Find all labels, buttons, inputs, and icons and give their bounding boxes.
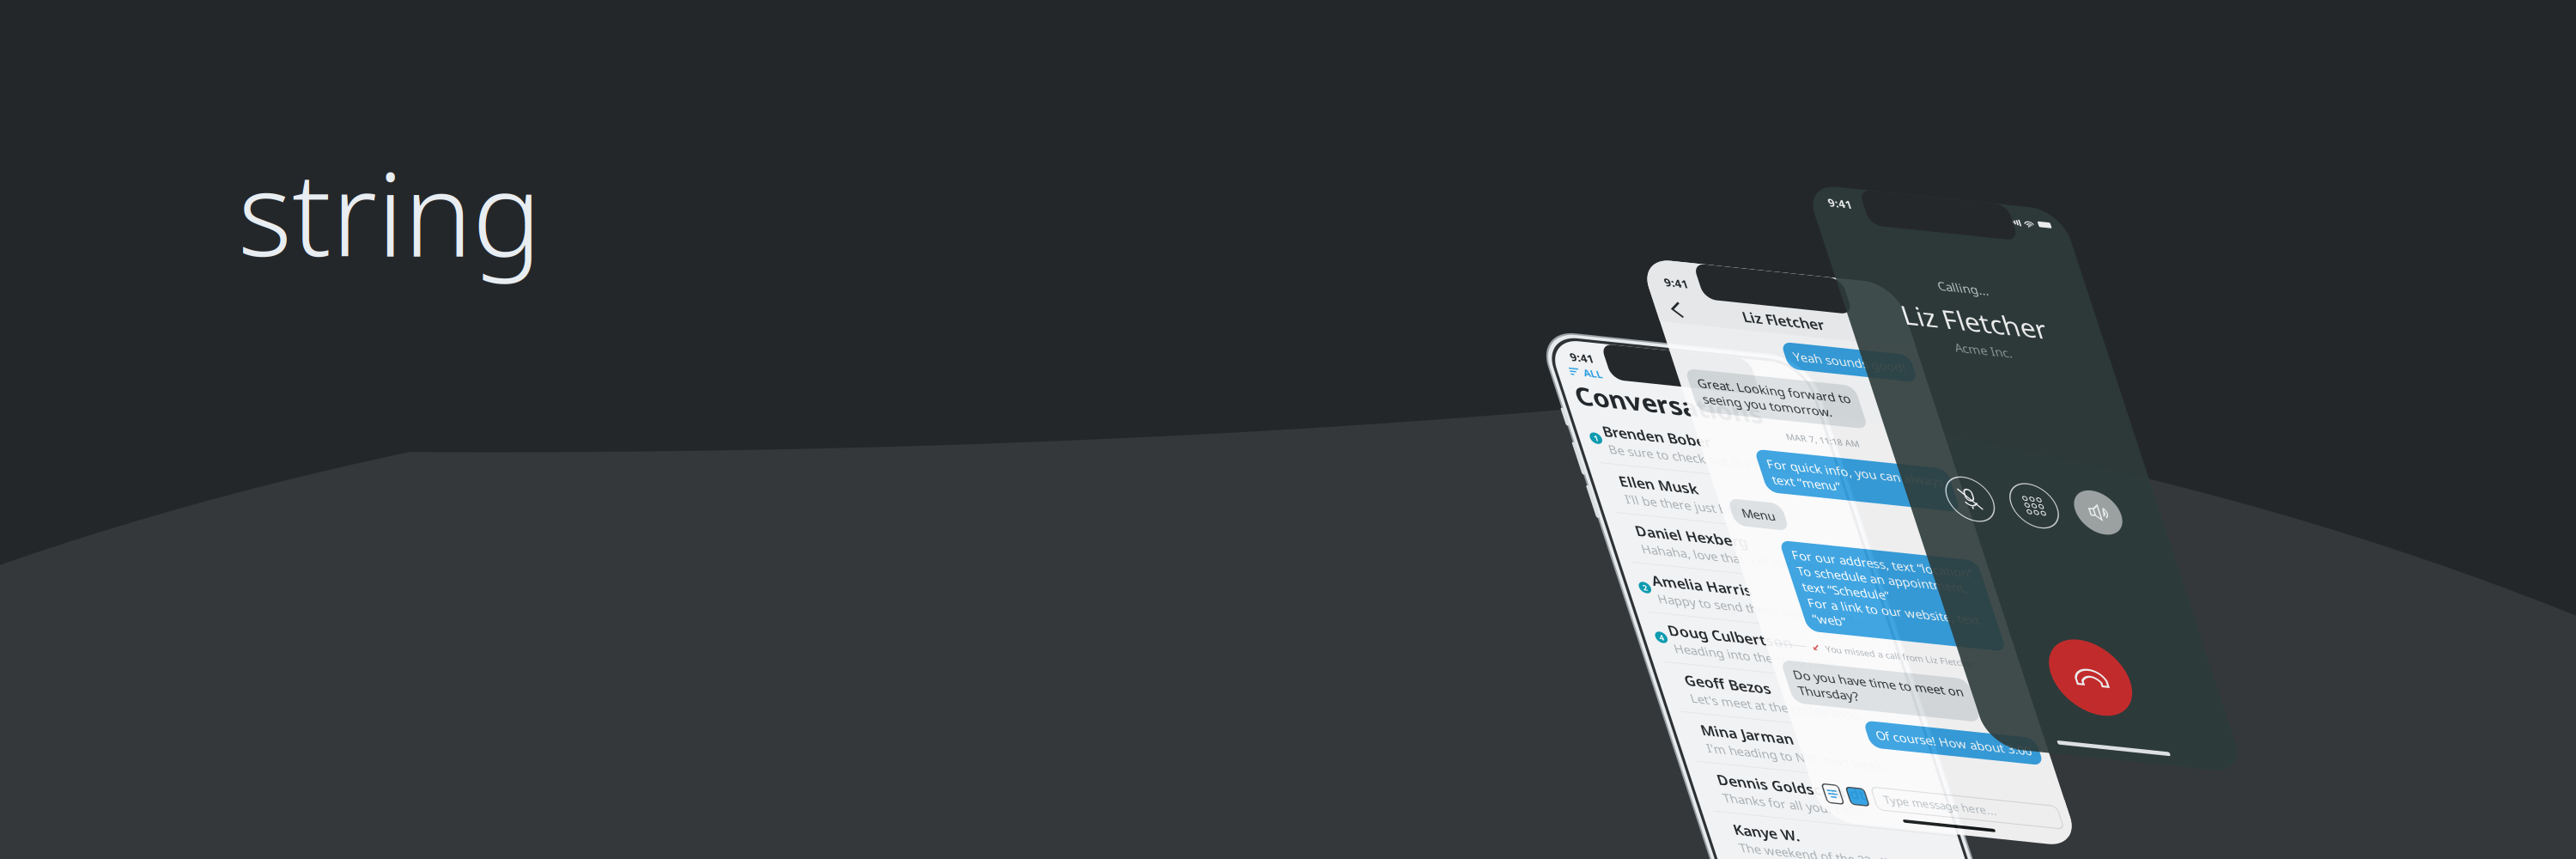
button[interactable]: Back bbox=[1650, 300, 1671, 320]
staticText: Liz Fletcher bbox=[1727, 300, 1809, 320]
staticText: Hahaha, love that. Let me know... bbox=[1570, 548, 1766, 565]
button[interactable]: Mina Jarman bbox=[1544, 730, 1801, 781]
staticText: Thanks for all your help! bbox=[1570, 810, 1713, 827]
staticText: Amelia Harris bbox=[1570, 580, 1671, 599]
staticText: I'll be there just before 9:00 bbox=[1570, 495, 1731, 512]
button[interactable]: Ellen Musk bbox=[1544, 468, 1801, 519]
button[interactable]: Keypad bbox=[1910, 486, 1957, 532]
staticText: Great. Looking forward to seeing you tom… bbox=[1657, 379, 1811, 413]
button[interactable]: Daniel Hexberg bbox=[1544, 520, 1801, 572]
button[interactable]: End call bbox=[1894, 650, 1973, 730]
staticText: 9:41 bbox=[1562, 347, 1586, 363]
button[interactable]: Geoff Bezos bbox=[1544, 677, 1801, 729]
staticText: 9:41 bbox=[1657, 274, 1681, 289]
staticText: Let's meet at the coffee shop. bbox=[1570, 705, 1744, 722]
button[interactable]: Type message here... bbox=[1699, 808, 1886, 832]
staticText: 9:41 bbox=[1823, 194, 1847, 209]
button[interactable]: Dennis Goldschmidt bbox=[1544, 782, 1801, 834]
staticText: Heading into the shop now. bbox=[1570, 653, 1733, 669]
staticText: MAR 7, 11:18 AM bbox=[1731, 430, 1805, 442]
button[interactable]: 4 bbox=[1544, 625, 1801, 676]
staticText: Doug Culbertson bbox=[1570, 632, 1695, 652]
staticText: Of course! How about 3:00 bbox=[1722, 742, 1879, 759]
staticText: Do you have time to meet on Thursday? bbox=[1657, 686, 1828, 719]
button[interactable]: ALL bbox=[1544, 363, 1801, 379]
staticText: ALL bbox=[1570, 364, 1589, 378]
staticText: Ellen Musk bbox=[1570, 475, 1649, 495]
staticText: Be sure to check out the restaurant... bbox=[1570, 443, 1787, 460]
staticText: Geoff Bezos bbox=[1570, 684, 1657, 704]
button[interactable]: 1 bbox=[1544, 415, 1801, 467]
button[interactable]: Kanye W. bbox=[1544, 835, 1801, 859]
staticText: I'm heading to NYC next week. bbox=[1570, 757, 1751, 774]
staticText: Calling... bbox=[1908, 271, 1959, 288]
staticText: Dennis Goldschmidt bbox=[1570, 789, 1719, 809]
button[interactable]: Mute bbox=[1846, 486, 1892, 532]
staticText: Brenden Bober bbox=[1570, 422, 1679, 442]
staticText: Conversations bbox=[1554, 379, 1741, 414]
staticText: For quick info, you can always text “men… bbox=[1702, 459, 1879, 493]
staticText: Happy to send those over! Will be... bbox=[1570, 600, 1778, 617]
staticText: Liz Fletcher bbox=[1861, 297, 2006, 333]
button[interactable]: Speaker bbox=[1975, 486, 2021, 532]
staticText: Daniel Hexberg bbox=[1570, 527, 1683, 547]
staticText: Type message here... bbox=[1708, 813, 1822, 828]
staticText: Menu bbox=[1659, 516, 1692, 532]
staticText: For our address, text “location” To sche… bbox=[1696, 556, 1879, 639]
staticText: Yeah sounds good! bbox=[1766, 339, 1879, 356]
staticText: string bbox=[238, 135, 542, 288]
staticText: Acme Inc. bbox=[1905, 337, 1962, 353]
button[interactable]: 2 bbox=[1544, 573, 1801, 624]
staticText: You missed a call from Liz Fletcher bbox=[1699, 656, 1850, 669]
